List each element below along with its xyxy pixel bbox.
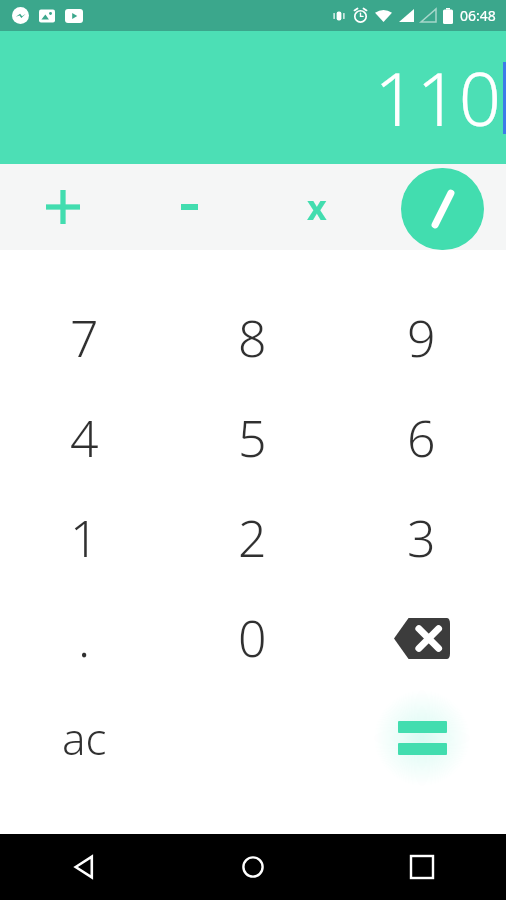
- button[interactable]: Backspace: [337, 588, 506, 688]
- button[interactable]: 8: [168, 288, 337, 388]
- staticText: 4: [70, 404, 99, 472]
- button[interactable]: .: [0, 588, 168, 688]
- button[interactable]: 4: [0, 388, 168, 488]
- button[interactable]: 9: [337, 288, 506, 388]
- staticText: x: [307, 184, 327, 230]
- button[interactable]: 1: [0, 488, 168, 588]
- staticText: 7: [70, 304, 99, 372]
- button[interactable]: Back: [0, 834, 168, 900]
- button[interactable]: Plus: [20, 164, 106, 250]
- button[interactable]: Multiply: [274, 164, 360, 250]
- button[interactable]: Home: [168, 834, 337, 900]
- button[interactable]: Minus: [146, 164, 232, 250]
- staticText: 06:48: [460, 6, 496, 25]
- button[interactable]: 0: [168, 588, 337, 688]
- button[interactable]: 2: [168, 488, 337, 588]
- staticText: 6: [407, 404, 436, 472]
- button[interactable]: 3: [337, 488, 506, 588]
- staticText: .: [78, 604, 91, 672]
- button[interactable]: Recent apps: [337, 834, 506, 900]
- button[interactable]: 6: [337, 388, 506, 488]
- button[interactable]: ac: [0, 688, 168, 788]
- button[interactable]: Divide: [401, 168, 484, 250]
- staticText: 2: [238, 504, 267, 572]
- staticText: 8: [238, 304, 267, 372]
- button[interactable]: 5: [168, 388, 337, 488]
- staticText: 1: [70, 504, 99, 572]
- button[interactable]: 7: [0, 288, 168, 388]
- staticText: 0: [238, 604, 267, 672]
- staticText: 9: [407, 304, 436, 372]
- staticText: 110: [374, 47, 501, 148]
- staticText: 5: [238, 404, 267, 472]
- button[interactable]: Equals: [337, 688, 506, 788]
- staticText: 3: [407, 504, 436, 572]
- staticText: ac: [62, 708, 107, 768]
